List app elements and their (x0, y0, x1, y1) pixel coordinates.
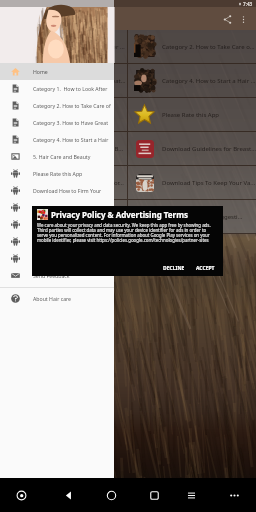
staticText: Category 1. How to Look After Y... (34, 43, 127, 51)
button[interactable]: Category 4. How to Start a Hair (0, 131, 114, 148)
staticText: Please Rate this App (33, 170, 83, 177)
staticText: ACCEPT (196, 265, 215, 272)
button[interactable]: Download Tips To Keep Your (0, 216, 114, 233)
button[interactable]: Please Rate this App (128, 98, 256, 131)
staticText: Send Feedback (33, 272, 70, 279)
button[interactable]: Category 1. How to Look After (0, 80, 114, 97)
staticText: Download Tips To Keep Your (33, 221, 103, 228)
button[interactable]: Download Tips To Keep Your Va... (128, 166, 256, 199)
button[interactable]: Download Home Remedies for... (0, 166, 127, 199)
staticText: Category 4. How to Start a Hair C... (162, 77, 256, 85)
staticText: We care about your privacy and data secu… (37, 222, 218, 244)
button[interactable]: Category 1. How to Look After Y... (0, 30, 127, 63)
button[interactable]: Category 2. How to Take Care of (0, 97, 114, 114)
button[interactable]: DECLINE (160, 264, 188, 273)
staticText: Download Home Remedies for... (34, 179, 124, 187)
staticText: Privacy Policy & Advertising Terms (51, 209, 189, 220)
staticText: Download Guidelines for Breast ... (162, 145, 256, 153)
staticText: Category 4. How to Start a Hair (33, 136, 109, 143)
staticText: Category 2. How to Take Care of (33, 102, 111, 109)
button[interactable]: Download Home Remedies (0, 233, 114, 250)
staticText: Category 3. How to Have Great (33, 119, 109, 126)
button[interactable]: Download Beauty Tips and T... (0, 200, 127, 233)
button[interactable]: Please Rate this App (0, 165, 114, 182)
button[interactable]: ACCEPT (193, 264, 218, 273)
button[interactable]: Recents (145, 486, 163, 504)
staticText: Category 1. How to Look After (33, 85, 108, 92)
button[interactable]: Category 2. How to Take Care of ... (128, 30, 256, 63)
button[interactable]: Home (102, 486, 120, 504)
button[interactable]: More (225, 486, 243, 504)
staticText: About Hair care (33, 295, 72, 302)
button[interactable]: About Hair care (0, 290, 114, 307)
staticText: DECLINE (163, 265, 185, 272)
button[interactable]: Download Beauty Suggesti... (128, 200, 256, 233)
staticText: Home (33, 68, 48, 75)
button[interactable]: 5. Hair Care and Beauty (0, 148, 114, 165)
staticText: 7:43 (243, 1, 253, 7)
button[interactable]: Share (219, 11, 235, 27)
staticText: Download How to Firm Your (33, 187, 102, 194)
staticText: Category 2. How to Take Care of ... (162, 43, 256, 51)
staticText: 5. Hair Care and Beauty (33, 153, 91, 160)
staticText: Download Tips To Keep Your Va... (162, 179, 256, 187)
staticText: Category 3. How to Have Great H... (34, 77, 127, 85)
button[interactable]: Download How to Firm Your B... (0, 132, 127, 165)
button[interactable]: Menu (182, 486, 200, 504)
button[interactable]: Download Guidelines for Breast (0, 199, 114, 216)
staticText: Download How to Firm Your B... (34, 145, 124, 153)
button[interactable]: Category 4. How to Start a Hair C... (128, 64, 256, 97)
button[interactable]: Download Beauty Suggestion (0, 250, 114, 267)
button[interactable]: 5. Hair Care and Beauty T... (0, 98, 127, 131)
button[interactable]: More options (235, 11, 251, 27)
button[interactable]: Category 3. How to Have Great H... (0, 64, 127, 97)
staticText: Download Beauty Tips and T... (34, 213, 119, 221)
button[interactable]: Download How to Firm Your (0, 182, 114, 199)
button[interactable]: Back (59, 486, 77, 504)
button[interactable]: Assistant (12, 486, 30, 504)
staticText: Download Guidelines for Breast (33, 204, 111, 211)
staticText: Please Rate this App (162, 111, 220, 119)
button[interactable]: Home (0, 63, 114, 80)
staticText: Download Home Remedies (33, 238, 100, 245)
staticText: Download Beauty Suggesti... (162, 213, 243, 221)
button[interactable]: Download Guidelines for Breast ... (128, 132, 256, 165)
button[interactable]: Category 3. How to Have Great (0, 114, 114, 131)
button[interactable]: Send Feedback (0, 267, 114, 284)
